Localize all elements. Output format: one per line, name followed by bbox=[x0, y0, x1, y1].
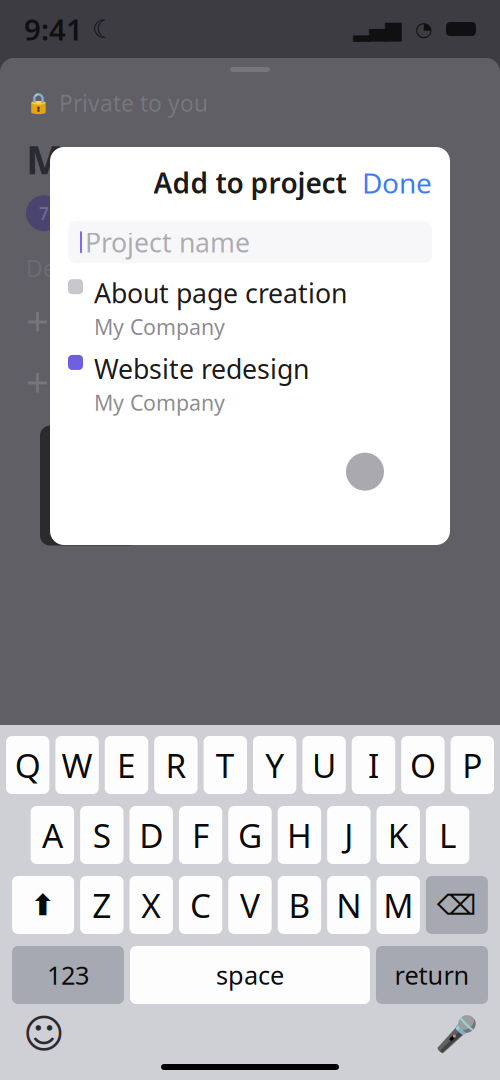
button[interactable]: I bbox=[352, 736, 395, 794]
staticText: Private to you bbox=[59, 88, 208, 118]
staticText: W bbox=[62, 743, 93, 787]
staticText: 9:41 bbox=[24, 9, 83, 48]
button[interactable]: S bbox=[80, 806, 123, 864]
button[interactable]: P bbox=[451, 736, 494, 794]
staticText: ◔ bbox=[401, 18, 446, 40]
button[interactable]: R bbox=[154, 736, 198, 794]
button[interactable]: O bbox=[401, 736, 445, 794]
staticText: 🎤 bbox=[434, 1014, 477, 1054]
staticText: My Company bbox=[94, 313, 225, 341]
button[interactable]: Emoji bbox=[16, 1010, 72, 1058]
staticText: + bbox=[26, 293, 49, 346]
button[interactable]: L bbox=[426, 806, 469, 864]
staticText: Z bbox=[92, 883, 111, 927]
staticText: F bbox=[192, 813, 209, 857]
staticText: T bbox=[216, 743, 235, 787]
staticText: K bbox=[388, 813, 409, 857]
button[interactable]: J bbox=[327, 806, 370, 864]
button[interactable]: U bbox=[302, 736, 346, 794]
button[interactable]: F bbox=[179, 806, 222, 864]
staticText: 🔒 bbox=[26, 92, 51, 114]
staticText: Website redesign bbox=[94, 351, 309, 386]
button[interactable]: Done bbox=[362, 164, 432, 201]
staticText: E bbox=[117, 743, 136, 787]
staticText: 7 bbox=[39, 202, 49, 225]
button[interactable]: Q bbox=[6, 736, 49, 794]
staticText: Y bbox=[265, 743, 284, 787]
button[interactable]: V bbox=[228, 876, 272, 934]
staticText: De bbox=[26, 253, 56, 283]
staticText: N bbox=[336, 883, 361, 927]
staticText: ⬆ bbox=[31, 888, 56, 922]
button[interactable]: Scan text bbox=[122, 1020, 178, 1076]
staticText: L bbox=[439, 813, 456, 857]
staticText: D bbox=[139, 813, 163, 857]
button[interactable]: G bbox=[228, 806, 272, 864]
button[interactable]: Z bbox=[80, 876, 123, 934]
staticText: U bbox=[312, 743, 336, 787]
staticText: Add to project bbox=[153, 164, 346, 201]
button[interactable]: return bbox=[376, 946, 488, 1004]
button[interactable]: Y bbox=[253, 736, 296, 794]
staticText: H bbox=[287, 813, 312, 857]
button[interactable]: H bbox=[278, 806, 321, 864]
staticText: V bbox=[240, 883, 260, 927]
staticText: return bbox=[394, 958, 469, 992]
staticText: ⌫ bbox=[437, 889, 477, 921]
button[interactable]: M bbox=[376, 876, 420, 934]
staticText: Project name bbox=[85, 224, 250, 260]
button[interactable]: Delete bbox=[426, 876, 488, 934]
staticText: space bbox=[216, 958, 284, 992]
button[interactable]: C bbox=[179, 876, 222, 934]
staticText: I bbox=[368, 743, 379, 787]
staticText: ▂▄▆ bbox=[353, 17, 401, 41]
button[interactable]: Add people bbox=[306, 1025, 376, 1071]
staticText: X bbox=[141, 883, 161, 927]
button[interactable]: T bbox=[204, 736, 247, 794]
staticText: B bbox=[288, 883, 310, 927]
button[interactable]: Dictate bbox=[428, 1010, 484, 1058]
staticText: ☺ bbox=[23, 1011, 65, 1057]
staticText: J bbox=[344, 813, 353, 857]
button[interactable]: E bbox=[105, 736, 148, 794]
staticText: G bbox=[238, 813, 262, 857]
staticText: M bbox=[383, 883, 413, 927]
staticText: M bbox=[26, 132, 64, 185]
staticText: R bbox=[165, 743, 186, 787]
button[interactable]: space bbox=[130, 946, 370, 1004]
staticText: Q bbox=[15, 743, 41, 787]
button[interactable]: About page creation bbox=[50, 275, 450, 341]
staticText: ☾ bbox=[83, 15, 115, 43]
button[interactable]: W bbox=[55, 736, 99, 794]
staticText: 123 bbox=[47, 958, 89, 992]
staticText: My Company bbox=[94, 388, 225, 417]
staticText: S bbox=[93, 813, 111, 857]
button[interactable]: Create bbox=[376, 1020, 490, 1076]
staticText: Create bbox=[392, 1030, 474, 1066]
staticText: P bbox=[462, 743, 482, 787]
button[interactable]: 123 bbox=[12, 946, 124, 1004]
button[interactable]: Website redesign bbox=[50, 351, 450, 417]
button[interactable]: X bbox=[129, 876, 173, 934]
staticText: O bbox=[410, 743, 436, 787]
button[interactable]: K bbox=[376, 806, 420, 864]
button[interactable]: Project name bbox=[68, 221, 432, 263]
staticText: 🖼 bbox=[17, 1030, 58, 1066]
button[interactable]: A bbox=[31, 806, 74, 864]
staticText: About page creation bbox=[94, 275, 347, 311]
button[interactable]: N bbox=[327, 876, 370, 934]
button[interactable]: B bbox=[278, 876, 321, 934]
staticText: + bbox=[26, 354, 49, 407]
button[interactable]: Shift bbox=[12, 876, 74, 934]
staticText: A bbox=[42, 813, 63, 857]
button[interactable]: Photos bbox=[10, 1020, 66, 1076]
staticText: C bbox=[190, 883, 211, 927]
staticText: Done bbox=[362, 164, 432, 201]
button[interactable]: D bbox=[129, 806, 173, 864]
